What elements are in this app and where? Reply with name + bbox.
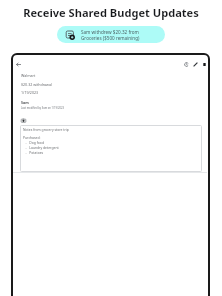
- button[interactable]: Edit: [190, 59, 200, 69]
- staticText: - Potatoes: [23, 150, 44, 155]
- button[interactable]: Delete: [199, 59, 209, 69]
- button[interactable]: Back: [13, 59, 24, 70]
- staticText: $20.32 withdrawal: [21, 82, 52, 87]
- staticText: - Laundry detergent: [23, 145, 59, 150]
- staticText: Purchased:: [23, 135, 41, 140]
- staticText: 1/19/2023: [21, 90, 39, 95]
- staticText: Groceries ($500 remaining): [81, 35, 140, 41]
- staticText: Sam withdrew $20.32 from: [81, 29, 139, 35]
- button[interactable]: Add photo: [21, 118, 26, 123]
- button[interactable]: Sam withdrew $20.32 from: [57, 26, 165, 43]
- staticText: - Dog food: [23, 140, 44, 145]
- staticText: Sam: [21, 100, 29, 105]
- staticText: Notes from grocery store trip: [23, 127, 69, 132]
- staticText: Receive Shared Budget Updates: [0, 5, 222, 20]
- button[interactable]: Version history: [181, 59, 191, 69]
- staticText: Last modified by Sam on 1/19/2023: [21, 106, 64, 110]
- staticText: Walmart: [21, 73, 36, 78]
